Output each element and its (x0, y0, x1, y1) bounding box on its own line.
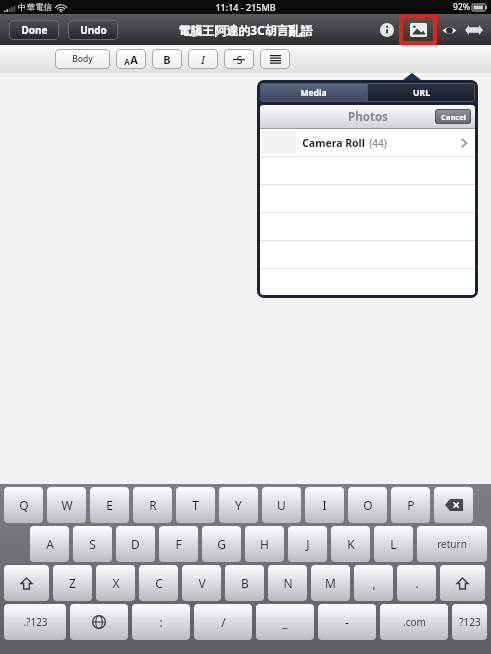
staticText: K (347, 536, 355, 552)
button[interactable]: A (116, 49, 146, 69)
button[interactable]: Cancel (435, 109, 471, 124)
button[interactable]: C (139, 565, 178, 601)
staticText: 92% (453, 1, 470, 13)
staticText: C (155, 575, 163, 591)
button[interactable]: return (417, 526, 487, 562)
staticText: _ (282, 614, 288, 630)
button[interactable]: S (224, 49, 254, 69)
staticText: G (217, 536, 226, 552)
button[interactable]: Insert media (399, 14, 437, 45)
staticText: O (363, 497, 373, 513)
button[interactable]: K (331, 526, 370, 562)
staticText: R (149, 497, 157, 513)
button[interactable]: Undo (68, 20, 118, 40)
button[interactable]: - (318, 604, 376, 640)
staticText: D (131, 536, 140, 552)
button[interactable]: G (202, 526, 241, 562)
staticText: S (89, 536, 96, 552)
staticText: I (322, 497, 327, 513)
staticText: I (201, 52, 206, 67)
button[interactable]: : (132, 604, 190, 640)
staticText: (44) (369, 136, 387, 150)
staticText: Q (19, 497, 29, 513)
button[interactable]: E (90, 487, 129, 523)
button[interactable]: I (305, 487, 344, 523)
staticText: return (437, 537, 467, 551)
staticText: V (198, 575, 206, 591)
staticText: Body (72, 53, 93, 65)
button[interactable]: Info (375, 18, 399, 42)
button[interactable]: A (30, 526, 69, 562)
button[interactable]: Preview (437, 18, 461, 42)
button[interactable]: , (354, 565, 393, 601)
staticText: ?123 (459, 615, 481, 629)
button[interactable]: H (245, 526, 284, 562)
staticText: B (241, 575, 249, 591)
button[interactable]: Backspace (434, 487, 473, 523)
button[interactable]: .?123 (4, 604, 66, 640)
button[interactable]: F (159, 526, 198, 562)
staticText: Y (235, 497, 242, 513)
staticText: 中華電信 (18, 2, 52, 13)
button[interactable]: L (374, 526, 413, 562)
staticText: S (236, 52, 243, 67)
staticText: Z (69, 575, 76, 591)
staticText: P (407, 497, 415, 513)
button[interactable] (260, 49, 290, 69)
button[interactable]: D (116, 526, 155, 562)
button[interactable]: V (182, 565, 221, 601)
button[interactable]: Media (260, 83, 367, 102)
staticText: X (112, 575, 120, 591)
staticText: J (306, 536, 310, 552)
button[interactable]: URL (368, 83, 475, 102)
button[interactable]: Globe (70, 604, 128, 640)
button[interactable]: Q (4, 487, 43, 523)
staticText: W (61, 497, 73, 513)
button[interactable]: Done (9, 20, 59, 40)
button[interactable]: Camera Roll (260, 129, 475, 156)
staticText: - (345, 614, 349, 630)
staticText: E (106, 497, 113, 513)
button[interactable]: Shift (4, 565, 49, 601)
button[interactable]: B (152, 49, 182, 69)
staticText: : (159, 614, 163, 630)
button[interactable]: M (311, 565, 350, 601)
button[interactable]: Shift (440, 565, 485, 601)
button[interactable]: Z (53, 565, 92, 601)
staticText: .com (403, 615, 426, 629)
staticText: L (390, 536, 397, 552)
button[interactable]: I (188, 49, 218, 69)
button[interactable]: HTML (461, 17, 487, 43)
button[interactable]: _ (256, 604, 314, 640)
staticText: T (192, 497, 199, 513)
button[interactable]: S (73, 526, 112, 562)
button[interactable]: T (176, 487, 215, 523)
staticText: A (124, 56, 130, 67)
button[interactable]: R (133, 487, 172, 523)
button[interactable]: J (288, 526, 327, 562)
button[interactable]: N (268, 565, 307, 601)
button[interactable]: B (225, 565, 264, 601)
staticText: Undo (80, 23, 107, 37)
staticText: A (130, 52, 138, 67)
staticText: 11:14 - 215MB (215, 1, 276, 13)
staticText: Cancel (441, 112, 466, 122)
staticText: M (325, 575, 336, 591)
staticText: Camera Roll (302, 136, 365, 150)
button[interactable]: U (262, 487, 301, 523)
button[interactable]: Y (219, 487, 258, 523)
button[interactable]: ?123 (452, 604, 487, 640)
button[interactable]: W (47, 487, 86, 523)
staticText: Media (300, 87, 327, 99)
button[interactable]: X (96, 565, 135, 601)
button[interactable]: Body (55, 49, 110, 69)
button[interactable]: P (391, 487, 430, 523)
staticText: Done (21, 23, 48, 37)
button[interactable]: / (194, 604, 252, 640)
staticText: U (277, 497, 286, 513)
button[interactable]: . (397, 565, 436, 601)
button[interactable]: O (348, 487, 387, 523)
staticText: , (372, 575, 376, 591)
button[interactable]: .com (380, 604, 448, 640)
staticText: / (221, 614, 226, 630)
